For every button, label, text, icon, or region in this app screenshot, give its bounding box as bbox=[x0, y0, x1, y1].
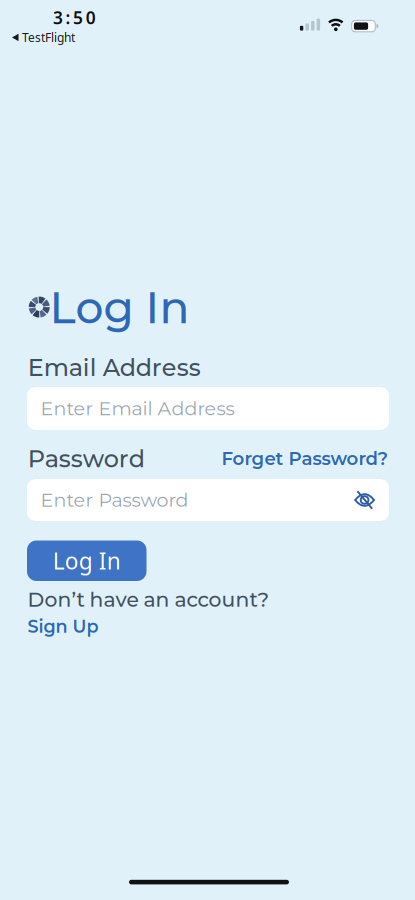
button[interactable]: Log In bbox=[27, 540, 146, 581]
button[interactable]: Forget Password? bbox=[221, 447, 388, 469]
button[interactable]: Enter Password bbox=[27, 479, 389, 521]
staticText: TestFlight bbox=[22, 29, 75, 45]
staticText: Forget Password? bbox=[221, 447, 388, 469]
staticText: : bbox=[65, 6, 70, 29]
staticText: Don’t have an account? bbox=[27, 587, 269, 612]
staticText: Log In bbox=[53, 546, 121, 576]
button[interactable]: Show Password bbox=[355, 490, 375, 510]
staticText: Sign Up bbox=[27, 616, 98, 637]
button[interactable]: Sign Up bbox=[27, 616, 98, 637]
staticText: 0 bbox=[86, 6, 96, 29]
button[interactable]: Enter Email Address bbox=[27, 387, 389, 430]
staticText: Enter Email Address bbox=[40, 397, 234, 420]
staticText: 5 bbox=[73, 6, 83, 29]
button[interactable]: TestFlight bbox=[12, 29, 75, 45]
staticText: Log In bbox=[49, 281, 189, 334]
staticText: Password bbox=[28, 444, 145, 473]
staticText: Enter Password bbox=[40, 488, 188, 512]
staticText: 3 bbox=[53, 6, 63, 29]
staticText: Email Address bbox=[28, 353, 201, 382]
